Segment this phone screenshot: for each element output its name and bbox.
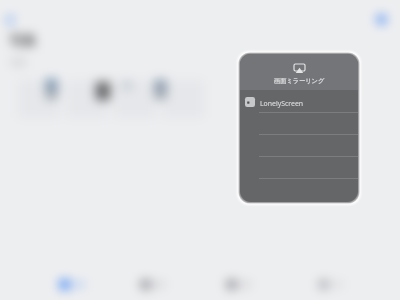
- button[interactable]: [240, 112, 358, 134]
- other: AirPlay: [294, 64, 305, 73]
- button[interactable]: [227, 280, 251, 289]
- button[interactable]: Account: [377, 15, 386, 24]
- staticText: 画面ミラーリング: [274, 77, 325, 85]
- button[interactable]: [162, 80, 204, 118]
- button[interactable]: [319, 280, 343, 289]
- button[interactable]: [240, 178, 358, 200]
- staticText: 写真: [10, 33, 35, 49]
- button[interactable]: [18, 80, 60, 118]
- button[interactable]: [240, 156, 358, 178]
- button[interactable]: [141, 280, 165, 289]
- button[interactable]: LonelyScreen: [240, 90, 358, 112]
- button[interactable]: [114, 80, 156, 118]
- button[interactable]: [240, 134, 358, 156]
- button[interactable]: [60, 280, 85, 289]
- button[interactable]: [66, 80, 108, 118]
- staticText: LonelyScreen: [260, 99, 304, 108]
